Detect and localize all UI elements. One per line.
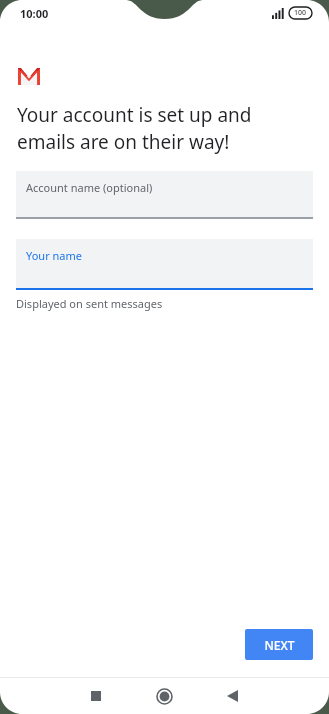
staticText: Account name (optional) (26, 180, 153, 195)
staticText: NEXT (264, 637, 295, 653)
button[interactable]: Recent apps (78, 678, 114, 714)
staticText: Your name (26, 248, 82, 263)
button[interactable]: NEXT (245, 629, 313, 660)
button[interactable]: Your name (16, 239, 313, 290)
button[interactable]: Account name (optional) (16, 171, 313, 219)
staticText: Your account is set up and emails are on… (17, 102, 252, 155)
staticText: 100 (294, 8, 307, 18)
button[interactable]: Home (146, 678, 182, 714)
button[interactable]: Back (214, 678, 250, 714)
staticText: 10:00 (20, 6, 49, 21)
staticText: Displayed on sent messages (16, 296, 163, 311)
